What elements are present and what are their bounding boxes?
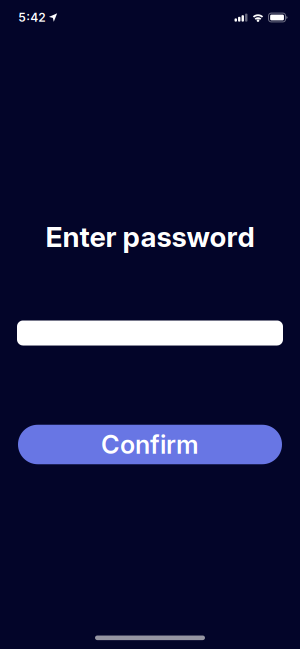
button[interactable] (17, 320, 283, 345)
staticText: Enter password (45, 220, 254, 253)
staticText: Confirm (101, 430, 199, 459)
button[interactable]: Confirm (18, 425, 282, 464)
staticText: 5:42 (18, 10, 45, 25)
